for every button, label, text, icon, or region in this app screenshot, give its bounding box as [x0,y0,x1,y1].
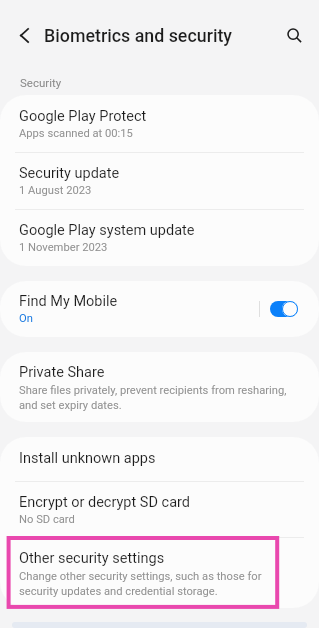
button[interactable]: Search [276,17,316,57]
button[interactable]: Google Play system update [0,210,319,266]
button[interactable]: Other security settings [0,538,319,608]
button[interactable]: Encrypt or decrypt SD card [0,482,319,537]
staticText: Install unknown apps [19,450,156,467]
staticText: Share files privately, prevent recipient… [19,384,287,411]
button[interactable]: Google Play Protect [0,95,319,152]
staticText: Security update [19,165,120,182]
staticText: 1 November 2023 [19,241,108,254]
button[interactable]: Install unknown apps [0,437,319,481]
button[interactable]: Private Share [0,352,319,422]
staticText: Biometrics and security [44,25,233,46]
staticText: Apps scanned at 00:15 [19,127,133,140]
staticText: Private Share [19,364,105,381]
staticText: No SD card [19,513,75,526]
staticText: 1 August 2023 [19,184,92,197]
staticText: On [19,312,33,325]
button[interactable]: Navigate up [6,17,42,53]
button[interactable]: Security update [0,153,319,209]
staticText: Find My Mobile [19,293,118,310]
staticText: Security [20,76,62,89]
staticText: Change other security settings, such as … [19,570,262,597]
staticText: Google Play system update [19,222,195,239]
staticText: Other security settings [19,550,165,567]
staticText: Encrypt or decrypt SD card [19,494,190,511]
staticText: Google Play Protect [19,108,147,125]
button[interactable]: Find My Mobile, on [270,297,298,321]
button[interactable]: Find My Mobile [0,281,319,337]
